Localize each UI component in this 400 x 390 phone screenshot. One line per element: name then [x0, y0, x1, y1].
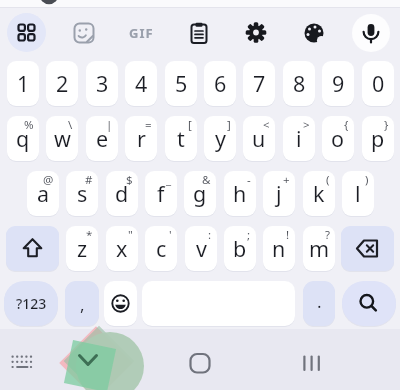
- button[interactable]: l: [342, 171, 374, 216]
- button[interactable]: a: [27, 171, 59, 216]
- button[interactable]: o: [322, 116, 354, 161]
- button[interactable]: [342, 281, 396, 326]
- staticText: y: [215, 124, 226, 153]
- staticText: ]: [227, 117, 231, 133]
- staticText: v: [196, 234, 207, 263]
- staticText: t: [177, 124, 185, 153]
- button[interactable]: m: [303, 226, 335, 271]
- staticText: n: [272, 234, 286, 263]
- staticText: w: [54, 124, 71, 153]
- button[interactable]: [66, 338, 118, 390]
- staticText: ;: [247, 227, 251, 243]
- button[interactable]: f: [145, 171, 177, 216]
- button[interactable]: 0: [362, 61, 394, 106]
- staticText: ?: [325, 227, 330, 243]
- button[interactable]: r: [125, 116, 157, 161]
- staticText: >: [303, 117, 310, 133]
- staticText: 6: [214, 69, 227, 98]
- staticText: f: [157, 179, 165, 208]
- staticText: <: [263, 117, 270, 133]
- staticText: =: [145, 117, 152, 133]
- staticText: [: [188, 117, 192, 133]
- button[interactable]: [341, 226, 394, 271]
- button[interactable]: n: [263, 226, 295, 271]
- button[interactable]: h: [224, 171, 256, 216]
- button[interactable]: j: [263, 171, 295, 216]
- button[interactable]: GIF: [121, 13, 161, 53]
- button[interactable]: 3: [86, 61, 118, 106]
- button[interactable]: ,: [65, 281, 99, 326]
- button[interactable]: 8: [283, 61, 315, 106]
- staticText: ": [128, 227, 133, 243]
- button[interactable]: [4, 346, 40, 382]
- button[interactable]: [294, 346, 330, 382]
- staticText: 8: [293, 69, 306, 98]
- button[interactable]: d: [106, 171, 138, 216]
- staticText: ): [365, 172, 369, 188]
- staticText: x: [116, 234, 128, 263]
- button[interactable]: [236, 12, 276, 52]
- button[interactable]: v: [185, 226, 217, 271]
- staticText: :: [208, 227, 212, 243]
- button[interactable]: s: [66, 171, 98, 216]
- button[interactable]: [179, 13, 219, 53]
- button[interactable]: c: [145, 226, 177, 271]
- staticText: |: [106, 117, 113, 133]
- staticText: u: [252, 124, 266, 153]
- staticText: $: [126, 172, 133, 188]
- button[interactable]: 6: [204, 61, 236, 106]
- staticText: h: [233, 179, 247, 208]
- button[interactable]: [7, 13, 46, 52]
- staticText: -: [247, 172, 251, 188]
- button[interactable]: 7: [243, 61, 275, 106]
- staticText: p: [371, 124, 385, 153]
- staticText: ?123: [16, 294, 47, 313]
- button[interactable]: w: [46, 116, 78, 161]
- button[interactable]: b: [224, 226, 256, 271]
- staticText: 7: [253, 69, 266, 98]
- button[interactable]: [64, 13, 104, 53]
- button[interactable]: g: [184, 171, 216, 216]
- button[interactable]: t: [165, 116, 197, 161]
- button[interactable]: 1: [7, 61, 39, 106]
- staticText: +: [283, 172, 290, 188]
- button[interactable]: [294, 13, 334, 53]
- button[interactable]: .: [303, 281, 335, 326]
- staticText: l: [355, 179, 361, 208]
- staticText: &: [202, 172, 211, 188]
- button[interactable]: i: [283, 116, 315, 161]
- button[interactable]: z: [66, 226, 98, 271]
- staticText: .: [317, 290, 322, 313]
- button[interactable]: 2: [46, 61, 78, 106]
- staticText: GIF: [129, 24, 154, 42]
- button[interactable]: e: [86, 116, 118, 161]
- staticText: e: [96, 124, 109, 153]
- button[interactable]: ?123: [4, 281, 58, 326]
- staticText: s: [77, 179, 88, 208]
- staticText: _: [166, 172, 172, 188]
- button[interactable]: [6, 226, 59, 271]
- button[interactable]: [352, 14, 390, 52]
- staticText: }: [384, 117, 389, 133]
- button[interactable]: [182, 346, 218, 382]
- staticText: \: [68, 117, 73, 133]
- button[interactable]: k: [303, 171, 335, 216]
- staticText: #: [85, 172, 93, 188]
- button[interactable]: 4: [125, 61, 157, 106]
- button[interactable]: x: [106, 226, 138, 271]
- staticText: 0: [372, 69, 385, 98]
- button[interactable]: 5: [165, 61, 197, 106]
- button[interactable]: 9: [322, 61, 354, 106]
- staticText: %: [24, 117, 34, 133]
- button[interactable]: p: [362, 116, 394, 161]
- button[interactable]: u: [243, 116, 275, 161]
- button[interactable]: q: [7, 116, 39, 161]
- staticText: ': [169, 227, 172, 243]
- staticText: d: [115, 179, 129, 208]
- button[interactable]: y: [204, 116, 236, 161]
- staticText: (: [326, 172, 330, 188]
- staticText: *: [86, 227, 93, 243]
- staticText: c: [156, 234, 167, 263]
- button[interactable]: [104, 281, 137, 326]
